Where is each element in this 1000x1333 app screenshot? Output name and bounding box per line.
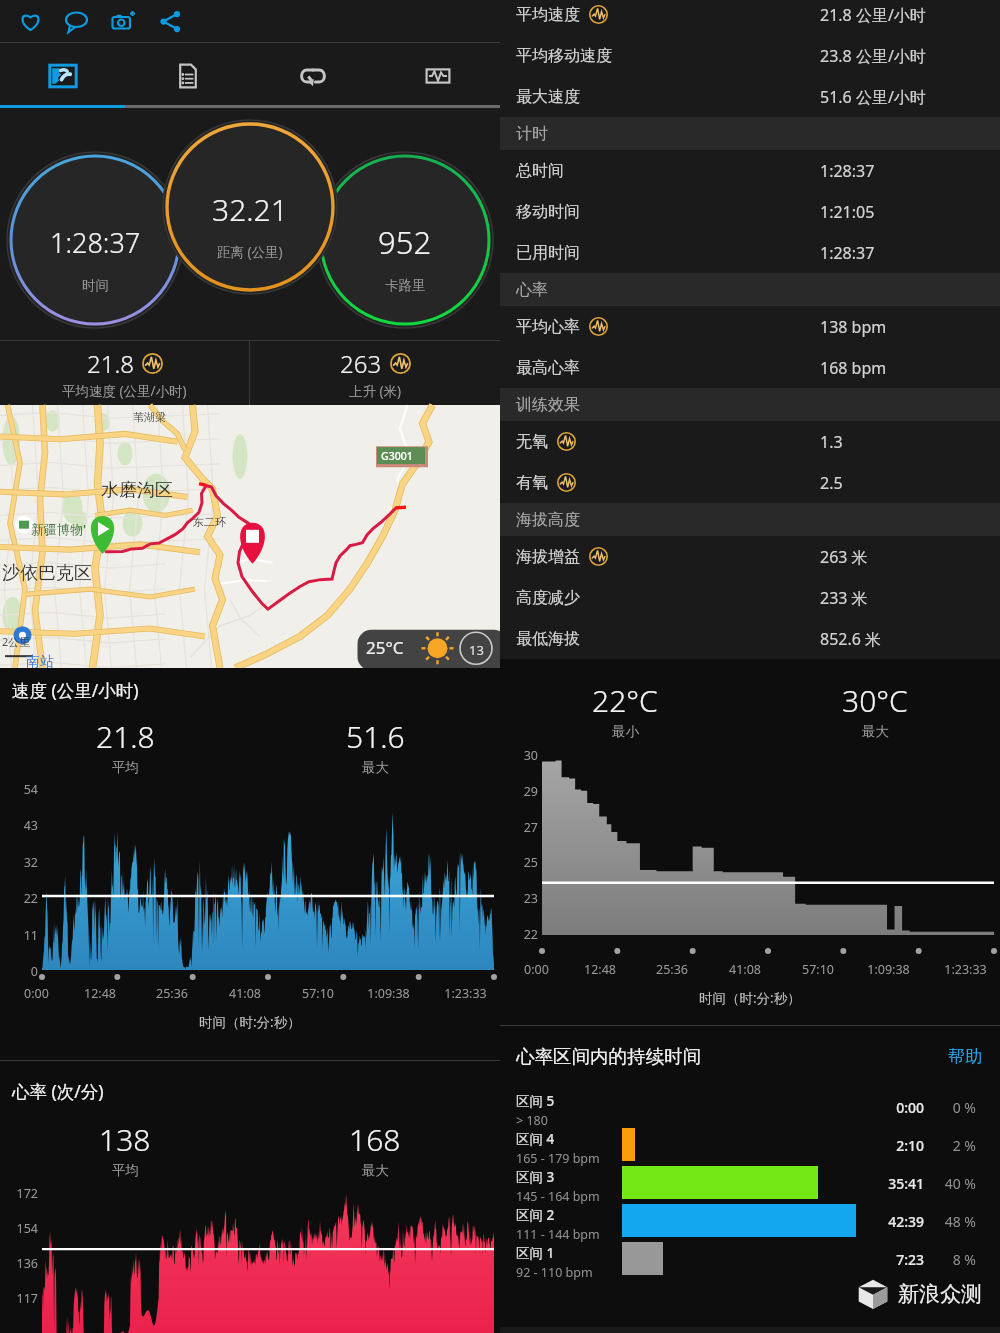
staticText: 1.3 bbox=[820, 431, 843, 453]
button[interactable]: 区间 3 bbox=[500, 1164, 1000, 1202]
staticText: 高度减少 bbox=[516, 588, 580, 608]
button[interactable]: 区间 5 bbox=[500, 1088, 1000, 1126]
staticText: 21.8 bbox=[87, 347, 134, 380]
button[interactable]: 有氧 bbox=[500, 462, 1000, 503]
staticText: 时间 bbox=[82, 277, 109, 294]
staticText: 平均速度 bbox=[516, 5, 580, 25]
staticText: 25:36 bbox=[156, 985, 188, 1002]
staticText: 0:00 bbox=[24, 985, 49, 1002]
staticText: 时间（时:分:秒） bbox=[699, 989, 801, 1007]
button[interactable]: 最高心率 bbox=[500, 347, 1000, 388]
staticText: 138 bbox=[99, 1119, 151, 1160]
staticText: 海拔增益 bbox=[516, 547, 580, 567]
button[interactable]: 1:28:37 bbox=[11, 158, 179, 326]
staticText: 8 % bbox=[952, 1250, 976, 1269]
button[interactable]: 平均心率 bbox=[500, 306, 1000, 347]
button[interactable]: 最低海拔 bbox=[500, 618, 1000, 659]
staticText: 沙依巴克区 bbox=[2, 562, 92, 585]
button[interactable]: 51.6 bbox=[250, 716, 500, 776]
button[interactable]: 最大速度 bbox=[500, 76, 1000, 117]
button[interactable]: 平均移动速度 bbox=[500, 35, 1000, 76]
staticText: 21.8 公里/小时 bbox=[820, 4, 926, 26]
staticText: 移动时间 bbox=[516, 202, 580, 222]
staticText: 有氧 bbox=[516, 473, 548, 493]
button[interactable]: 952 bbox=[321, 158, 489, 326]
staticText: 13 bbox=[469, 641, 484, 659]
staticText: 40 % bbox=[944, 1174, 976, 1193]
button[interactable]: Route map bbox=[0, 405, 500, 668]
staticText: 165 - 179 bpm bbox=[516, 1150, 600, 1167]
button[interactable]: 32.21 bbox=[166, 125, 334, 293]
staticText: 12:48 bbox=[84, 985, 116, 1002]
button[interactable]: 22°C bbox=[500, 680, 750, 740]
button[interactable]: 帮助 bbox=[946, 1042, 984, 1071]
staticText: 卡路里 bbox=[385, 277, 426, 294]
staticText: 22°C bbox=[592, 680, 658, 721]
staticText: 12:48 bbox=[584, 961, 616, 978]
button[interactable]: 138 bbox=[0, 1119, 250, 1179]
staticText: 0:00 bbox=[896, 1098, 924, 1117]
staticText: 51.6 bbox=[346, 716, 405, 757]
staticText: 263 bbox=[340, 347, 382, 380]
button[interactable]: 区间 2 bbox=[500, 1202, 1000, 1240]
button[interactable]: 移动时间 bbox=[500, 191, 1000, 232]
button[interactable]: 总时间 bbox=[500, 150, 1000, 191]
staticText: 54 bbox=[23, 781, 38, 798]
button[interactable]: Details tab bbox=[125, 43, 250, 108]
staticText: 0 % bbox=[952, 1098, 976, 1117]
staticText: 22 bbox=[23, 890, 38, 907]
button[interactable]: Charts tab bbox=[375, 43, 500, 108]
button[interactable]: 168 bbox=[250, 1119, 500, 1179]
staticText: 2.5 bbox=[820, 472, 843, 494]
staticText: 41:08 bbox=[229, 985, 261, 1002]
staticText: 心率 bbox=[516, 280, 548, 300]
staticText: 最低海拔 bbox=[516, 629, 580, 649]
staticText: 48 % bbox=[944, 1212, 976, 1231]
staticText: 最小 bbox=[612, 723, 639, 740]
button[interactable]: 21.8 bbox=[0, 341, 249, 405]
staticText: 1:23:33 bbox=[444, 985, 487, 1002]
staticText: 最大 bbox=[362, 1162, 389, 1179]
button[interactable]: 已用时间 bbox=[500, 232, 1000, 273]
button[interactable]: Like bbox=[9, 0, 51, 42]
button[interactable]: 区间 4 bbox=[500, 1126, 1000, 1164]
staticText: 25:36 bbox=[656, 961, 688, 978]
staticText: 952 bbox=[378, 221, 432, 263]
button[interactable]: Map tab bbox=[0, 43, 125, 108]
staticText: 新疆博物' bbox=[31, 520, 87, 538]
button[interactable]: 高度减少 bbox=[500, 577, 1000, 618]
staticText: 训练效果 bbox=[516, 395, 580, 415]
button[interactable]: Add photo bbox=[102, 0, 144, 42]
button[interactable]: Comment bbox=[55, 0, 97, 42]
staticText: 海拔高度 bbox=[516, 510, 580, 530]
staticText: 111 - 144 bpm bbox=[516, 1226, 600, 1243]
staticText: 东二环 bbox=[193, 515, 226, 529]
button[interactable]: Share bbox=[149, 0, 191, 42]
staticText: 1:09:38 bbox=[867, 961, 910, 978]
staticText: 23 bbox=[523, 890, 538, 907]
button[interactable]: 30°C bbox=[750, 680, 1000, 740]
staticText: 2 % bbox=[952, 1136, 976, 1155]
staticText: 已用时间 bbox=[516, 243, 580, 263]
button[interactable]: 平均速度 bbox=[500, 0, 1000, 35]
staticText: 心率 (次/分) bbox=[12, 1079, 104, 1103]
staticText: 帮助 bbox=[948, 1046, 982, 1067]
button[interactable]: 无氧 bbox=[500, 421, 1000, 462]
staticText: 0 bbox=[30, 963, 38, 980]
staticText: 154 bbox=[16, 1220, 38, 1237]
button[interactable]: Laps tab bbox=[250, 43, 375, 108]
staticText: 平均速度 (公里/小时) bbox=[62, 382, 187, 400]
staticText: 32.21 bbox=[212, 189, 288, 230]
button[interactable]: 海拔增益 bbox=[500, 536, 1000, 577]
button[interactable]: 21.8 bbox=[0, 716, 250, 776]
staticText: 51.6 公里/小时 bbox=[820, 86, 926, 108]
staticText: 57:10 bbox=[302, 985, 334, 1002]
staticText: G3001 bbox=[381, 449, 413, 463]
staticText: 21.8 bbox=[96, 716, 155, 757]
button[interactable]: 区间 1 bbox=[500, 1240, 1000, 1278]
staticText: 2:10 bbox=[896, 1136, 924, 1155]
staticText: 1:23:33 bbox=[944, 961, 987, 978]
staticText: 1:09:38 bbox=[367, 985, 410, 1002]
button[interactable]: 263 bbox=[250, 341, 500, 405]
staticText: 30°C bbox=[842, 680, 908, 721]
